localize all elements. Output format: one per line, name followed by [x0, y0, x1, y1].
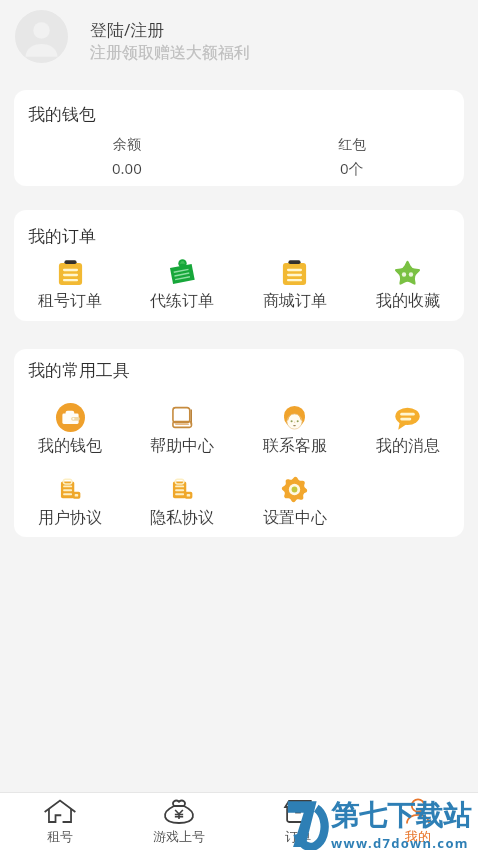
staticText: 我的消息 — [376, 436, 440, 456]
staticText: 我的 — [405, 828, 431, 844]
button[interactable]: 代练订单 — [126, 258, 238, 311]
button[interactable]: 我的 — [358, 793, 478, 850]
staticText: 红包 — [338, 136, 366, 154]
staticText: 租号 — [47, 828, 73, 844]
button[interactable]: 联系客服 — [238, 403, 351, 456]
button[interactable]: 我的钱包 — [14, 403, 126, 456]
button[interactable]: 我的消息 — [351, 403, 464, 456]
staticText: 租号订单 — [38, 291, 102, 311]
button[interactable]: 租号 — [0, 793, 119, 850]
button[interactable]: 游戏上号 — [119, 793, 238, 850]
staticText: 我的钱包 — [38, 436, 102, 456]
button[interactable]: 用户协议 — [14, 475, 126, 528]
button[interactable]: 红包 — [239, 136, 464, 178]
button[interactable]: 商城订单 — [238, 258, 351, 311]
staticText: 登陆/注册 — [90, 18, 165, 41]
button[interactable]: 余额 — [14, 136, 239, 178]
staticText: 我的收藏 — [376, 291, 440, 311]
button[interactable]: 我的收藏 — [351, 258, 464, 311]
staticText: 0个 — [340, 158, 364, 178]
button[interactable]: 租号订单 — [14, 258, 126, 311]
staticText: 隐私协议 — [150, 508, 214, 528]
staticText: 帮助中心 — [150, 436, 214, 456]
staticText: 订单 — [285, 828, 311, 844]
staticText: 我的钱包 — [28, 104, 96, 125]
button[interactable]: 登陆/注册 — [0, 0, 478, 72]
staticText: 注册领取赠送大额福利 — [90, 43, 250, 63]
staticText: 联系客服 — [263, 436, 327, 456]
button[interactable]: 设置中心 — [238, 475, 351, 528]
button[interactable]: 隐私协议 — [126, 475, 238, 528]
staticText: 我的订单 — [28, 226, 96, 247]
staticText: 第七下载站 — [331, 798, 471, 833]
staticText: 商城订单 — [263, 291, 327, 311]
staticText: www.d7down.com — [331, 834, 469, 850]
staticText: 游戏上号 — [153, 828, 205, 844]
staticText: 0.00 — [112, 158, 142, 178]
staticText: 用户协议 — [38, 508, 102, 528]
staticText: 代练订单 — [150, 291, 214, 311]
staticText: 余额 — [113, 136, 141, 154]
staticText: 我的常用工具 — [28, 360, 130, 381]
button[interactable]: 订单 — [238, 793, 358, 850]
button[interactable]: 帮助中心 — [126, 403, 238, 456]
staticText: 设置中心 — [263, 508, 327, 528]
